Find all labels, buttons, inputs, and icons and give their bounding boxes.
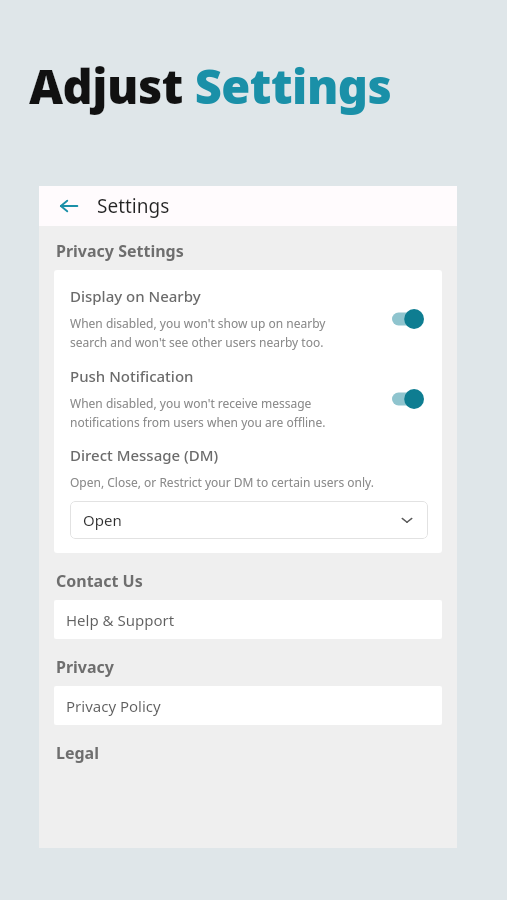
staticText: notifications from users when you are of… [70, 414, 326, 430]
button[interactable]: Help & Support [54, 600, 442, 639]
staticText: When disabled, you won't receive message [70, 395, 312, 411]
staticText: Open [83, 510, 122, 530]
button[interactable]: Back [53, 190, 85, 222]
staticText: Display on Nearby [70, 286, 201, 306]
button[interactable]: Toggle Display on Nearby [392, 308, 428, 330]
staticText: Direct Message (DM) [70, 445, 219, 465]
staticText: Adjust Settings [29, 54, 392, 118]
staticText: When disabled, you won't show up on near… [70, 315, 326, 331]
staticText: Settings [97, 193, 170, 219]
staticText: Privacy Settings [56, 240, 184, 262]
staticText: Privacy Policy [66, 696, 161, 716]
button[interactable]: Privacy Policy [54, 686, 442, 725]
staticText: Open, Close, or Restrict your DM to cert… [70, 474, 374, 490]
button[interactable]: Toggle Push Notification [392, 388, 428, 410]
button[interactable]: Open [70, 501, 428, 539]
staticText: Push Notification [70, 366, 194, 386]
staticText: search and won't see other users nearby … [70, 334, 324, 350]
staticText: Help & Support [66, 610, 175, 630]
staticText: Privacy [56, 656, 114, 678]
staticText: Legal [56, 742, 99, 764]
staticText: Contact Us [56, 570, 143, 592]
